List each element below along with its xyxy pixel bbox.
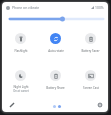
button[interactable]: Settings [95, 100, 105, 110]
staticText: Battery Saver [81, 49, 100, 53]
staticText: Screen Cast [83, 86, 99, 90]
staticText: Phone on vibrate [12, 5, 40, 10]
button[interactable]: Battery Share [38, 67, 73, 93]
button[interactable]: Edit tiles [7, 100, 17, 110]
button[interactable]: Screen Cast [73, 67, 108, 93]
button[interactable]: Night Light [3, 67, 38, 93]
staticText: Battery Share [46, 86, 65, 90]
staticText: Auto-rotate [48, 49, 64, 53]
staticText: Night Light [13, 85, 29, 89]
button[interactable]: Brightness [2, 15, 108, 24]
staticText: Flashlight [14, 49, 28, 53]
staticText: 100% [95, 5, 104, 10]
button[interactable]: Auto-rotate [38, 30, 73, 56]
button[interactable]: Flashlight [3, 30, 38, 56]
staticText: On at sunset [13, 89, 29, 93]
button[interactable]: Battery Saver [73, 30, 108, 56]
